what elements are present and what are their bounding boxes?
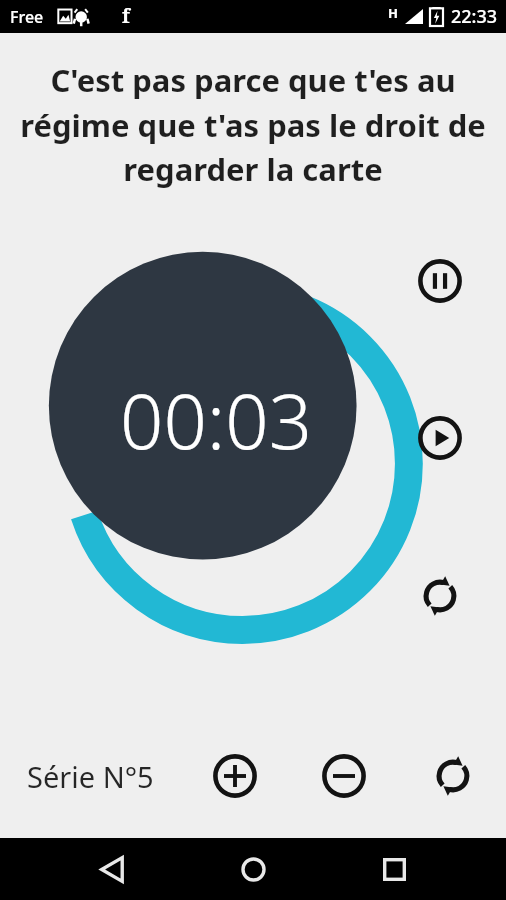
staticText: f — [122, 3, 130, 29]
button[interactable]: Remove a series — [315, 747, 373, 805]
button[interactable]: Reset series — [424, 747, 482, 805]
staticText: H — [388, 4, 398, 22]
staticText: 22:33 — [451, 4, 498, 29]
staticText: Free — [10, 6, 44, 28]
button[interactable]: Add a series — [206, 747, 264, 805]
button[interactable]: Home — [224, 840, 282, 898]
staticText: 00:03 — [120, 368, 313, 472]
button[interactable]: Série N°5 — [27, 757, 154, 796]
button[interactable]: Restart timer — [411, 567, 469, 625]
button[interactable]: Play — [411, 409, 469, 467]
button[interactable]: Back — [83, 840, 141, 898]
staticText: C'est pas parce que t'es au régime que t… — [16, 59, 490, 190]
button[interactable]: Pause — [411, 252, 469, 310]
button[interactable]: Recent apps — [365, 840, 423, 898]
button[interactable]: 00:03 — [38, 241, 400, 603]
